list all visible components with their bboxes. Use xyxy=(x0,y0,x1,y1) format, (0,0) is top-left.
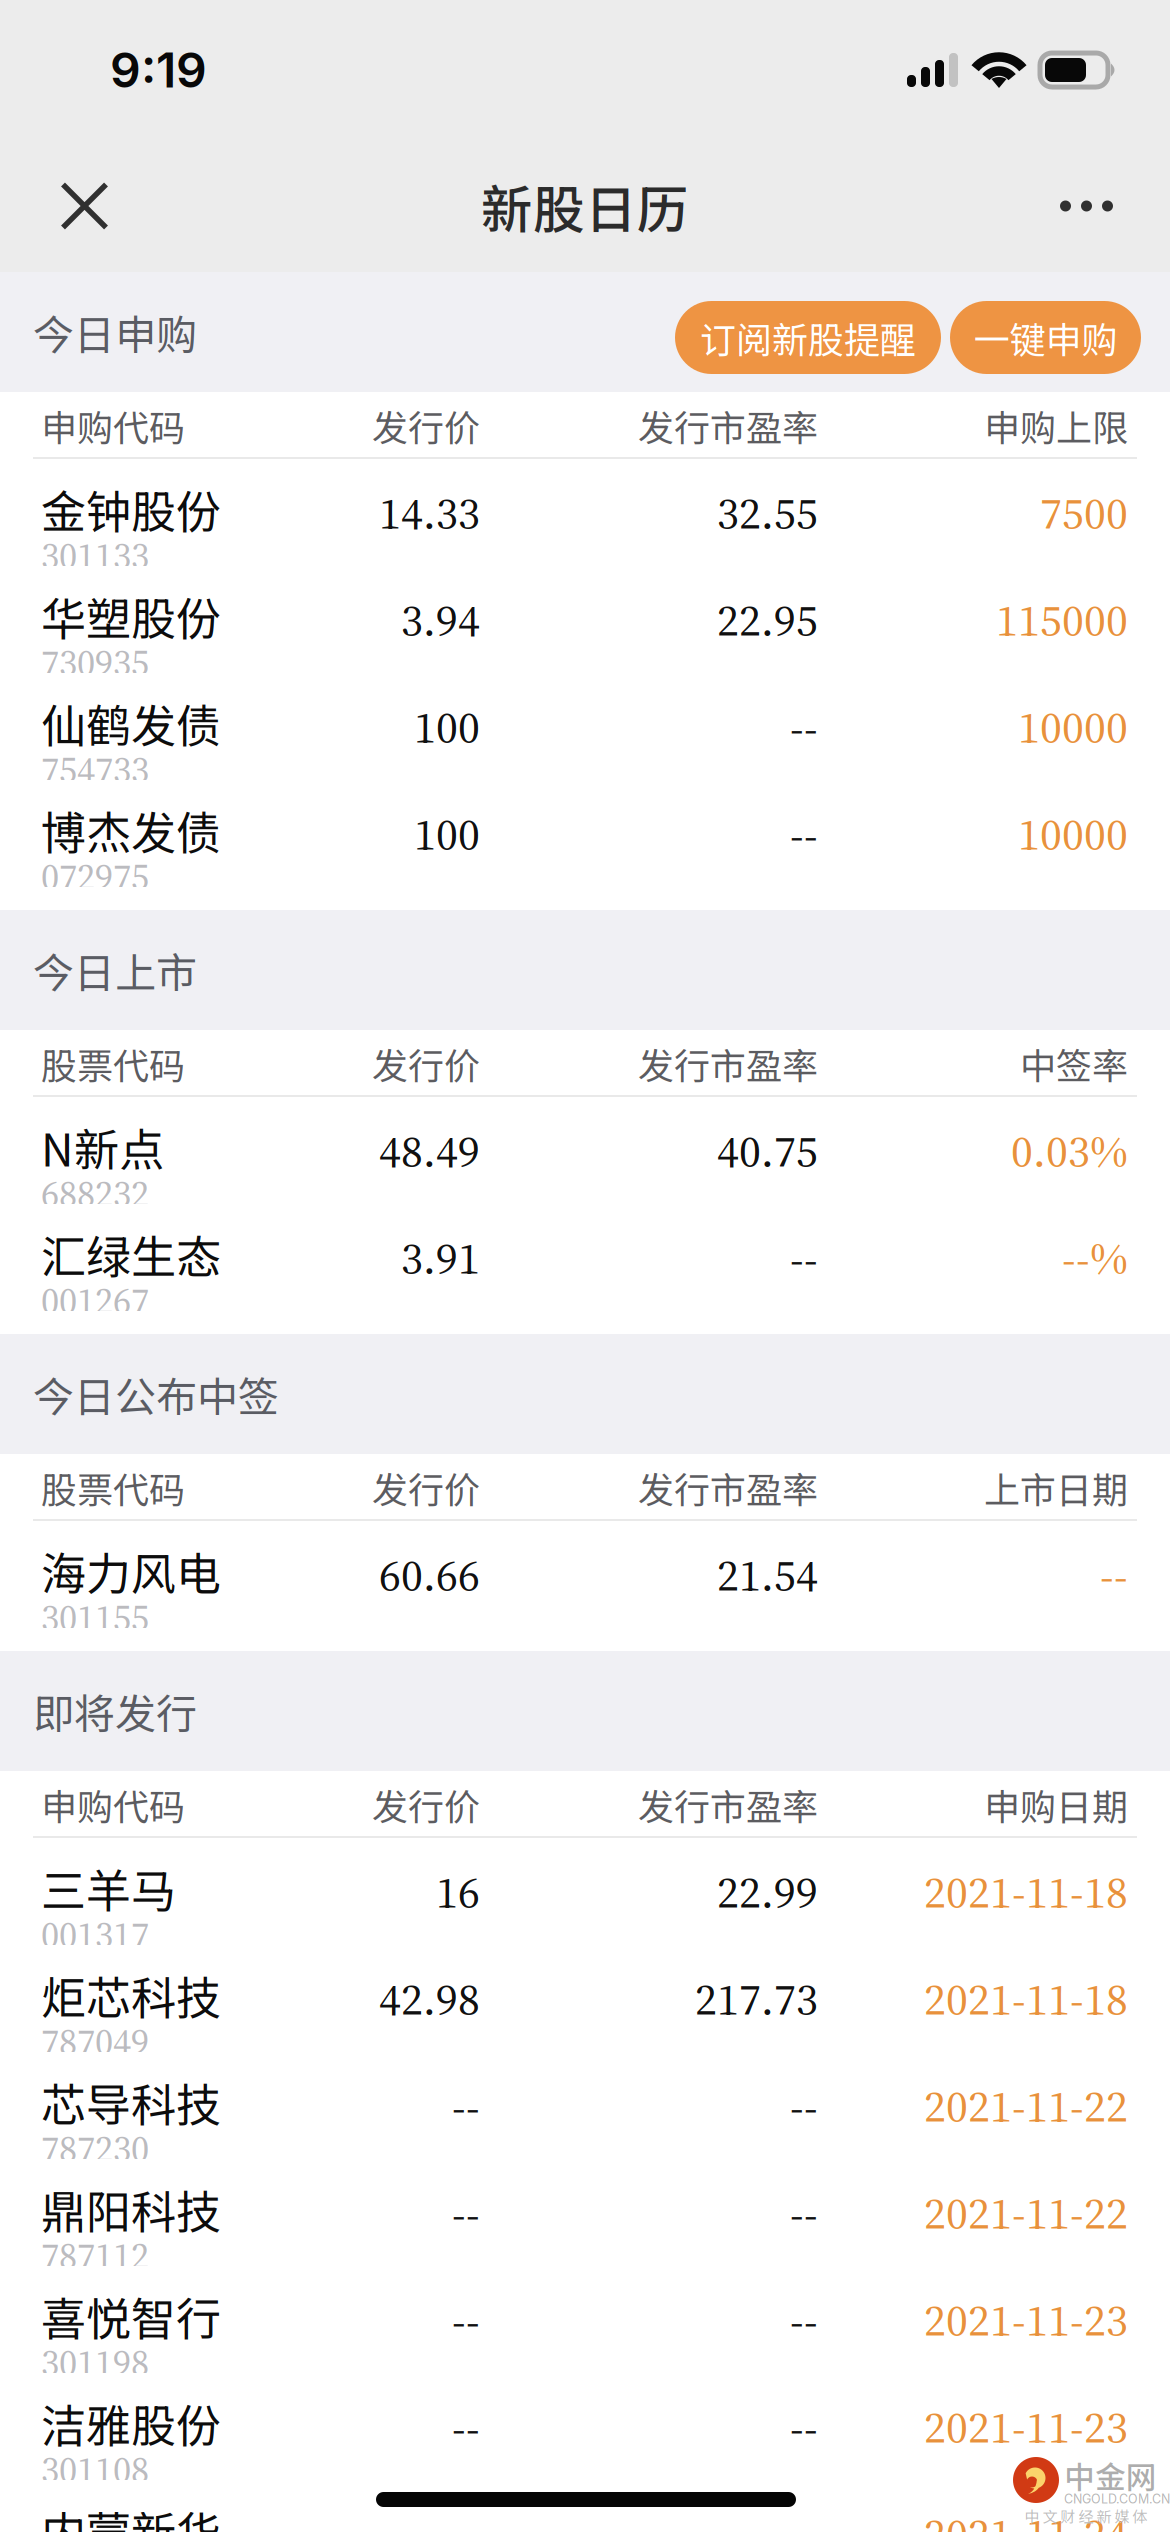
staticText: 汇绿生态 xyxy=(41,1221,221,1287)
staticText: 即将发行 xyxy=(33,1681,197,1741)
staticText: -- xyxy=(452,2289,480,2350)
staticText: 22.95 xyxy=(717,589,818,650)
staticText: 订阅新股提醒 xyxy=(700,311,916,363)
staticText: -- xyxy=(1100,1544,1128,1605)
staticText: 301198 xyxy=(41,2338,149,2388)
staticText: 鼎阳科技 xyxy=(41,2176,221,2242)
staticText: 发行价 xyxy=(372,1461,480,1513)
staticText: 2021-11-22 xyxy=(924,2075,1128,2136)
button[interactable]: 关闭 xyxy=(0,140,146,272)
staticText: 16 xyxy=(436,1861,480,1922)
staticText: 787230 xyxy=(41,2124,149,2174)
staticText: 2021-11-18 xyxy=(924,1968,1128,2029)
staticText: 中金网 xyxy=(1064,2453,1157,2497)
staticText: 754733 xyxy=(41,745,149,795)
staticText: 001267 xyxy=(41,1276,149,1326)
button[interactable]: 订阅新股提醒 xyxy=(675,301,941,374)
staticText: 21.54 xyxy=(717,1544,818,1605)
staticText: 发行市盈率 xyxy=(638,1778,818,1830)
button[interactable]: 一键申购 xyxy=(950,301,1141,374)
staticText: 今日申购 xyxy=(33,302,197,362)
staticText: 2021-11-22 xyxy=(924,2182,1128,2243)
staticText: 001317 xyxy=(41,1910,149,1960)
staticText: 787112 xyxy=(41,2231,149,2281)
staticText: 申购上限 xyxy=(984,399,1128,451)
staticText: 2021-11-23 xyxy=(924,2289,1128,2350)
staticText: 金钟股份 xyxy=(41,476,221,542)
staticText: 新股日历 xyxy=(481,169,689,243)
button[interactable]: 更多 xyxy=(1020,140,1170,272)
staticText: -- xyxy=(790,2289,818,2350)
staticText: 芯导科技 xyxy=(41,2069,221,2135)
staticText: 股票代码 xyxy=(41,1461,185,1513)
staticText: -- xyxy=(452,2182,480,2243)
staticText: 100 xyxy=(414,803,480,864)
staticText: 10000 xyxy=(1018,696,1128,757)
staticText: 730935 xyxy=(41,638,149,688)
staticText: 发行价 xyxy=(372,399,480,451)
staticText: 炬芯科技 xyxy=(41,1962,221,2028)
staticText: 今日公布中签 xyxy=(33,1364,279,1424)
staticText: 上市日期 xyxy=(984,1461,1128,1513)
staticText: 今日上市 xyxy=(33,940,197,1000)
staticText: 301108 xyxy=(41,2445,149,2495)
staticText: 发行市盈率 xyxy=(638,399,818,451)
staticText: 072975 xyxy=(41,852,149,902)
staticText: 3.91 xyxy=(401,1227,480,1288)
staticText: 100 xyxy=(414,696,480,757)
staticText: 7500 xyxy=(1040,482,1128,543)
staticText: 申购代码 xyxy=(41,399,185,451)
staticText: -- xyxy=(790,2075,818,2136)
staticText: 2021-11-24 xyxy=(924,2503,1128,2532)
staticText: 0.03% xyxy=(1011,1120,1128,1181)
staticText: 688232 xyxy=(41,1169,149,1219)
staticText: CNGOLD.COM.CN xyxy=(1064,2491,1170,2506)
staticText: -- xyxy=(790,2503,818,2532)
staticText: 中 文 财 经 新 媒 体 xyxy=(1024,2505,1147,2527)
staticText: 喜悦智行 xyxy=(41,2283,221,2349)
staticText: 发行市盈率 xyxy=(638,1461,818,1513)
staticText: 10000 xyxy=(1018,803,1128,864)
staticText: 22.99 xyxy=(717,1861,818,1922)
staticText: 115000 xyxy=(996,589,1128,650)
staticText: 48.49 xyxy=(379,1120,480,1181)
staticText: 42.98 xyxy=(379,1968,480,2029)
staticText: 洁雅股份 xyxy=(41,2390,221,2456)
staticText: 9:19 xyxy=(110,41,207,99)
staticText: 三羊马 xyxy=(41,1855,176,1921)
staticText: 3.94 xyxy=(401,589,480,650)
staticText: 787049 xyxy=(41,2017,149,2067)
staticText: 华塑股份 xyxy=(41,583,221,649)
staticText: 14.33 xyxy=(379,482,480,543)
staticText: 发行价 xyxy=(372,1037,480,1089)
staticText: 301133 xyxy=(41,531,149,581)
staticText: 申购代码 xyxy=(41,1778,185,1830)
staticText: -- xyxy=(790,2182,818,2243)
staticText: 股票代码 xyxy=(41,1037,185,1089)
staticText: -- xyxy=(452,2075,480,2136)
staticText: -- xyxy=(790,2396,818,2457)
staticText: -- xyxy=(790,696,818,757)
staticText: 2021-11-18 xyxy=(924,1861,1128,1922)
staticText: 60.66 xyxy=(379,1544,480,1605)
staticText: 2021-11-23 xyxy=(924,2396,1128,2457)
staticText: 217.73 xyxy=(695,1968,818,2029)
staticText: 仙鹤发债 xyxy=(41,690,221,756)
staticText: 海力风电 xyxy=(41,1538,221,1604)
staticText: -- xyxy=(790,1227,818,1288)
staticText: 发行市盈率 xyxy=(638,1037,818,1089)
staticText: 中签率 xyxy=(1020,1037,1128,1089)
staticText: -- xyxy=(452,2503,480,2532)
staticText: --% xyxy=(1062,1227,1128,1288)
staticText: N新点 xyxy=(41,1114,164,1180)
staticText: 一键申购 xyxy=(973,311,1117,363)
staticText: -- xyxy=(790,803,818,864)
staticText: 申购日期 xyxy=(984,1778,1128,1830)
staticText: 32.55 xyxy=(717,482,818,543)
staticText: -- xyxy=(452,2396,480,2457)
staticText: 内蒙新华 xyxy=(41,2497,221,2532)
staticText: 博杰发债 xyxy=(41,797,221,863)
staticText: 301155 xyxy=(41,1593,149,1643)
staticText: 40.75 xyxy=(717,1120,818,1181)
staticText: 发行价 xyxy=(372,1778,480,1830)
